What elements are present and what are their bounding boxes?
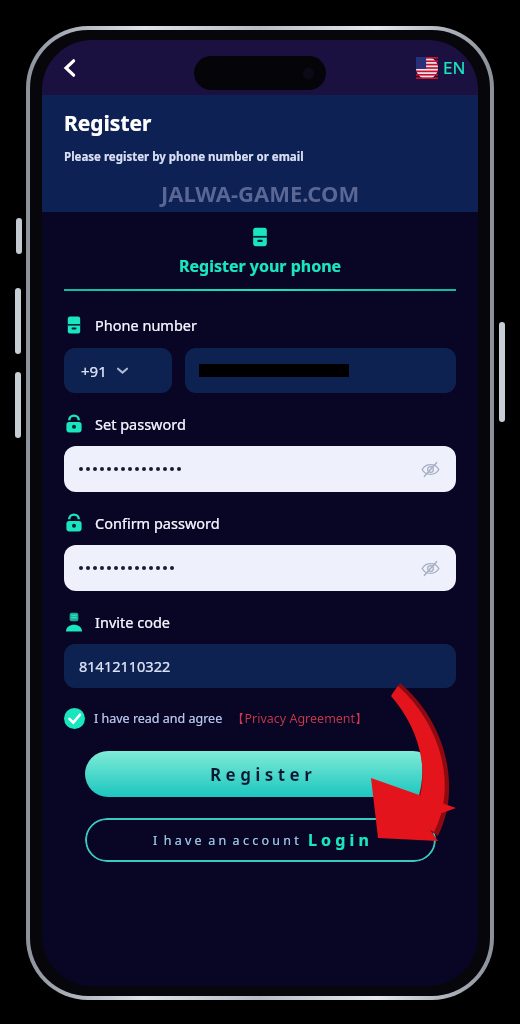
staticText: EN xyxy=(443,56,466,79)
button[interactable]: Toggle password visibility xyxy=(418,556,442,580)
button[interactable]: Toggle password visibility xyxy=(64,446,456,492)
button[interactable]: 81412110322 xyxy=(64,644,456,688)
staticText: Invite code xyxy=(95,612,170,632)
staticText: R e g i s t e r xyxy=(210,763,312,786)
staticText: +91 xyxy=(81,361,107,381)
staticText: I h a v e a n a c c o u n t xyxy=(153,832,299,849)
staticText: Please register by phone number or email xyxy=(64,149,304,165)
button[interactable]: I h a v e a n a c c o u n t xyxy=(85,818,436,862)
button[interactable]: EN xyxy=(416,56,466,79)
staticText: Set password xyxy=(95,414,186,434)
button[interactable]: R e g i s t e r xyxy=(85,751,436,797)
button[interactable]: I have read and agree xyxy=(64,708,368,729)
button[interactable]: Toggle password visibility xyxy=(418,457,442,481)
button[interactable]: Back xyxy=(50,48,90,88)
staticText: I have read and agree xyxy=(94,710,223,727)
staticText: Phone number xyxy=(95,315,197,335)
button[interactable]: Toggle password visibility xyxy=(64,545,456,591)
button[interactable] xyxy=(185,348,456,393)
button[interactable]: +91 xyxy=(64,348,172,393)
staticText: 【Privacy Agreement】 xyxy=(232,710,368,727)
staticText: Register xyxy=(64,109,152,138)
staticText: JALWA-GAME.COM xyxy=(161,178,360,208)
staticText: L o g i n xyxy=(308,829,369,851)
staticText: Register your phone xyxy=(179,255,342,277)
staticText: Confirm password xyxy=(95,513,220,533)
button[interactable]: Register your phone xyxy=(64,226,456,291)
staticText: 81412110322 xyxy=(79,656,171,676)
